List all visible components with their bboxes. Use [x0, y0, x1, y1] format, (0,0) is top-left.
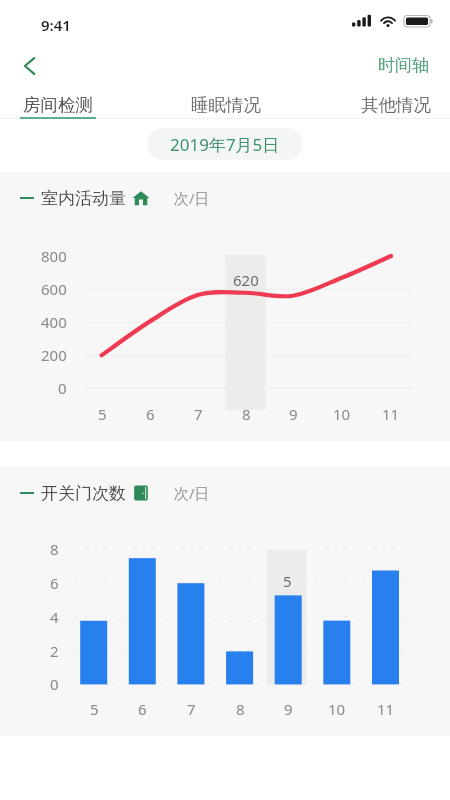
staticText: 7 [194, 404, 203, 424]
button[interactable]: Back [8, 44, 52, 88]
staticText: 0 [58, 378, 67, 398]
staticText: 房间检测 [23, 94, 93, 116]
staticText: 8 [236, 699, 245, 719]
staticText: 10 [333, 404, 351, 424]
staticText: 6 [138, 699, 147, 719]
staticText: 室内活动量 [41, 188, 126, 209]
staticText: 次/日 [174, 188, 210, 208]
staticText: 11 [377, 699, 395, 719]
staticText: 7 [187, 699, 196, 719]
staticText: 400 [41, 312, 67, 332]
staticText: 8 [50, 539, 59, 559]
staticText: 开关门次数 [41, 483, 126, 504]
button[interactable]: 开关门次数 [20, 481, 210, 505]
button[interactable]: 室内活动量 [20, 186, 210, 210]
staticText: 次/日 [174, 483, 210, 503]
staticText: 11 [382, 404, 400, 424]
button[interactable]: 时间轴 [357, 45, 450, 86]
staticText: 9:41 [41, 15, 71, 35]
staticText: 200 [41, 345, 67, 365]
staticText: 时间轴 [378, 55, 429, 76]
button[interactable]: 房间检测 [10, 88, 106, 119]
staticText: 800 [41, 246, 67, 266]
staticText: 9 [289, 404, 298, 424]
staticText: 600 [41, 279, 67, 299]
staticText: 5 [90, 699, 99, 719]
staticText: 9 [284, 699, 293, 719]
staticText: 睡眠情况 [191, 94, 261, 116]
staticText: 5 [98, 404, 107, 424]
button[interactable]: 睡眠情况 [178, 88, 274, 119]
button[interactable]: 2019年7月5日 [147, 128, 303, 160]
staticText: 0 [50, 674, 59, 694]
staticText: 6 [146, 404, 155, 424]
staticText: 10 [328, 699, 346, 719]
staticText: 5 [283, 571, 292, 591]
button[interactable]: 其他情况 [348, 88, 444, 119]
staticText: 620 [233, 270, 259, 290]
staticText: 2 [50, 641, 59, 661]
staticText: 其他情况 [361, 94, 431, 116]
staticText: 2019年7月5日 [170, 133, 280, 156]
staticText: 4 [50, 607, 59, 627]
staticText: 6 [50, 573, 59, 593]
staticText: 8 [242, 404, 251, 424]
